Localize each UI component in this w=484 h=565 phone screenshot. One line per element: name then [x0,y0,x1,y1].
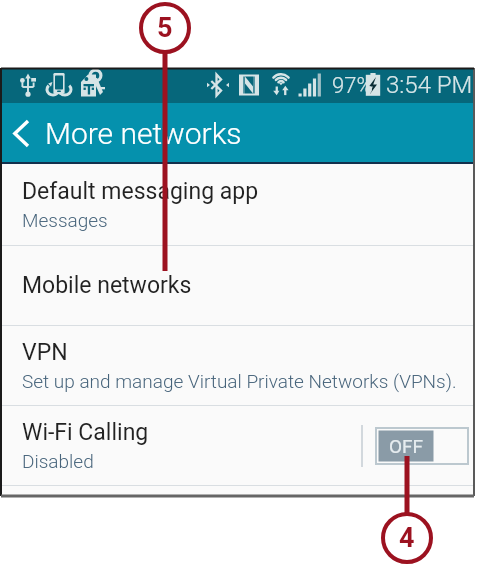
staticText: 3:54 PM [386,71,473,99]
staticText: 97% [332,73,373,99]
button[interactable]: VPN [1,326,474,405]
staticText: Mobile networks [22,272,192,299]
staticText: Wi-Fi Calling [22,419,149,446]
staticText: 4 [399,522,415,554]
staticText: Disabled [22,450,94,472]
button[interactable]: Wi-Fi Calling switch, off [376,428,468,464]
staticText: Set up and manage Virtual Private Networ… [22,370,457,392]
button[interactable]: Default messaging app [1,164,474,245]
staticText: Messages [22,209,108,231]
staticText: OFF [389,435,424,457]
staticText: 5 [157,12,173,44]
staticText: Default messaging app [22,178,259,205]
button[interactable]: Navigate up [1,103,45,164]
button[interactable]: Mobile networks [1,246,474,325]
staticText: VPN [22,339,68,366]
staticText: More networks [45,116,242,151]
button[interactable]: Wi-Fi Calling [1,406,474,485]
